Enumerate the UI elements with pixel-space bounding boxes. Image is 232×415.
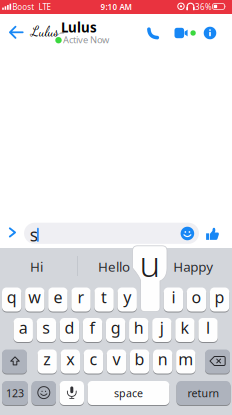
button[interactable]: e [48, 287, 68, 312]
button[interactable]: o [187, 287, 206, 312]
staticText: d [64, 317, 74, 338]
staticText: h [134, 317, 144, 338]
button[interactable]: m [176, 349, 195, 374]
button[interactable]: return [176, 380, 230, 405]
button[interactable]: space [88, 380, 169, 405]
staticText: return [187, 386, 219, 400]
staticText: s [42, 317, 50, 338]
button[interactable]: Shift [2, 349, 27, 374]
staticText: Hello [98, 258, 130, 275]
button[interactable]: Back [9, 26, 24, 39]
button[interactable]: a [14, 317, 33, 342]
staticText: q [7, 286, 17, 308]
staticText: Active Now [63, 33, 109, 46]
staticText: i [171, 286, 175, 308]
staticText: l [206, 317, 210, 338]
button[interactable]: Emoji [32, 380, 56, 405]
button[interactable]: Video call [173, 27, 196, 39]
staticText: u [139, 240, 160, 286]
staticText: c [89, 348, 97, 370]
button[interactable]: g [106, 317, 125, 342]
button[interactable]: Message [24, 223, 199, 244]
staticText: e [53, 286, 62, 308]
button[interactable]: h [129, 317, 148, 342]
staticText: Happy [173, 258, 213, 275]
button[interactable]: Happy [155, 251, 232, 281]
staticText: m [178, 348, 193, 370]
button[interactable]: y [117, 287, 137, 312]
staticText: Hi [30, 258, 43, 275]
staticText: v [112, 348, 120, 370]
staticText: a [19, 317, 28, 338]
staticText: n [158, 348, 168, 370]
button[interactable]: i [164, 287, 183, 312]
staticText: 9:10 AM [100, 1, 131, 12]
button[interactable]: Delete [205, 349, 230, 374]
button[interactable]: w [25, 287, 44, 312]
button[interactable]: n [153, 349, 172, 374]
button[interactable]: Hello [75, 251, 152, 281]
button[interactable]: l [198, 317, 218, 342]
staticText: o [191, 286, 201, 308]
staticText: 123 [6, 386, 24, 400]
button[interactable]: v [107, 349, 126, 374]
button[interactable]: s [37, 317, 56, 342]
staticText: w [28, 286, 41, 308]
staticText: 36% [195, 2, 212, 12]
button[interactable]: Send a like [205, 226, 219, 240]
staticText: r [77, 286, 84, 308]
staticText: f [90, 317, 96, 338]
button[interactable]: u [0, 0, 232, 415]
button[interactable]: 123 [2, 380, 28, 405]
button[interactable]: j [152, 317, 172, 342]
staticText: y [123, 286, 131, 308]
button[interactable]: p [210, 287, 229, 312]
button[interactable]: Dictation [60, 380, 84, 405]
button[interactable]: d [60, 317, 79, 342]
button[interactable]: z [37, 349, 57, 374]
button[interactable]: f [83, 317, 102, 342]
button[interactable]: r [71, 287, 91, 312]
staticText: j [160, 317, 164, 338]
staticText: Lulus [61, 18, 97, 36]
staticText: x [66, 348, 74, 370]
button[interactable]: k [175, 317, 195, 342]
staticText: b [135, 348, 145, 370]
button[interactable]: q [2, 287, 21, 312]
button[interactable]: x [61, 349, 80, 374]
staticText: space [114, 386, 143, 400]
staticText: Lulus- [31, 23, 66, 39]
staticText: t [101, 286, 107, 308]
staticText: s [30, 223, 38, 246]
staticText: LTE [38, 2, 50, 12]
button[interactable]: Voice call [146, 26, 160, 40]
staticText: Boost [12, 2, 34, 12]
button[interactable]: Choose an emoji [181, 227, 194, 240]
staticText: k [180, 317, 189, 338]
staticText: g [111, 317, 121, 338]
button[interactable]: t [94, 287, 114, 312]
staticText: p [215, 286, 225, 308]
button[interactable]: More actions [9, 227, 16, 238]
button[interactable]: c [84, 349, 103, 374]
staticText: z [43, 348, 51, 370]
button[interactable]: b [130, 349, 149, 374]
button[interactable]: Conversation information [204, 27, 216, 39]
button[interactable]: Hi [0, 251, 75, 281]
